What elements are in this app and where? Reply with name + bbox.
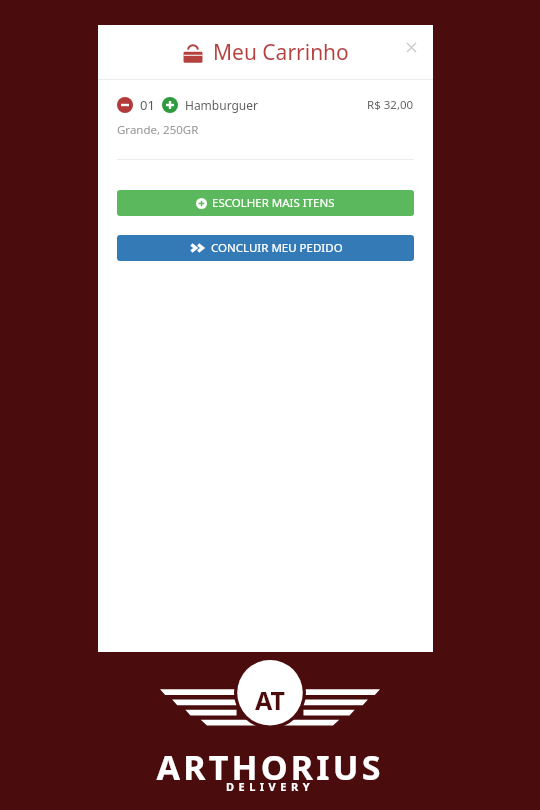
button[interactable]: Adicionar um item <box>162 97 178 113</box>
staticText: DELIVERY <box>0 779 540 794</box>
staticText: ESCOLHER MAIS ITENS <box>212 195 335 211</box>
staticText: ARTHORIUS <box>0 744 540 790</box>
button[interactable]: CONCLUIR MEU PEDIDO <box>117 235 414 261</box>
staticText: R$ 32,00 <box>367 97 414 113</box>
staticText: Meu Carrinho <box>213 38 349 67</box>
button[interactable]: Remover um item <box>117 97 133 113</box>
staticText: AT <box>255 683 285 717</box>
staticText: Grande, 250GR <box>117 122 199 138</box>
staticText: 01 <box>140 96 155 114</box>
button[interactable]: ESCOLHER MAIS ITENS <box>117 190 414 216</box>
staticText: CONCLUIR MEU PEDIDO <box>211 240 343 256</box>
staticText: Hamburguer <box>185 97 258 113</box>
button[interactable]: Fechar <box>397 33 425 61</box>
